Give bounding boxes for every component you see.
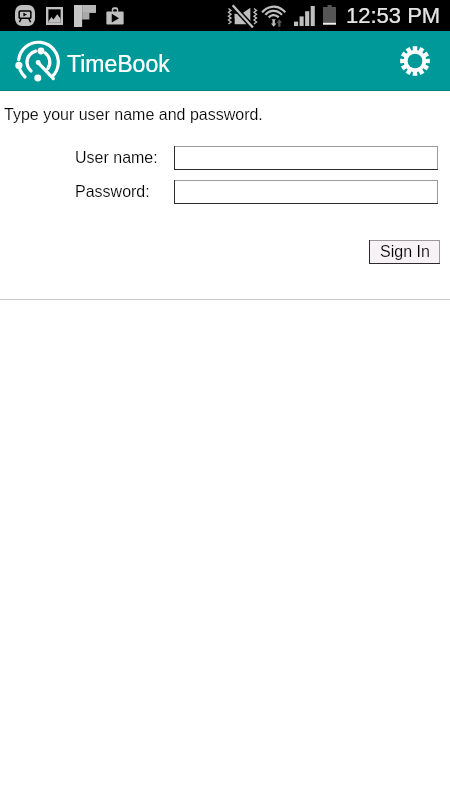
staticText: TimeBook xyxy=(67,51,170,77)
staticText: Sign In xyxy=(380,243,430,261)
staticText: Type your user name and password. xyxy=(4,106,263,124)
staticText: User name: xyxy=(75,149,158,167)
button[interactable]: Sign In xyxy=(369,240,440,264)
staticText: Password: xyxy=(75,183,150,201)
button[interactable]: Settings xyxy=(393,39,437,83)
staticText: 12:53 PM xyxy=(346,3,441,28)
button[interactable] xyxy=(174,146,438,170)
button[interactable] xyxy=(174,180,438,204)
